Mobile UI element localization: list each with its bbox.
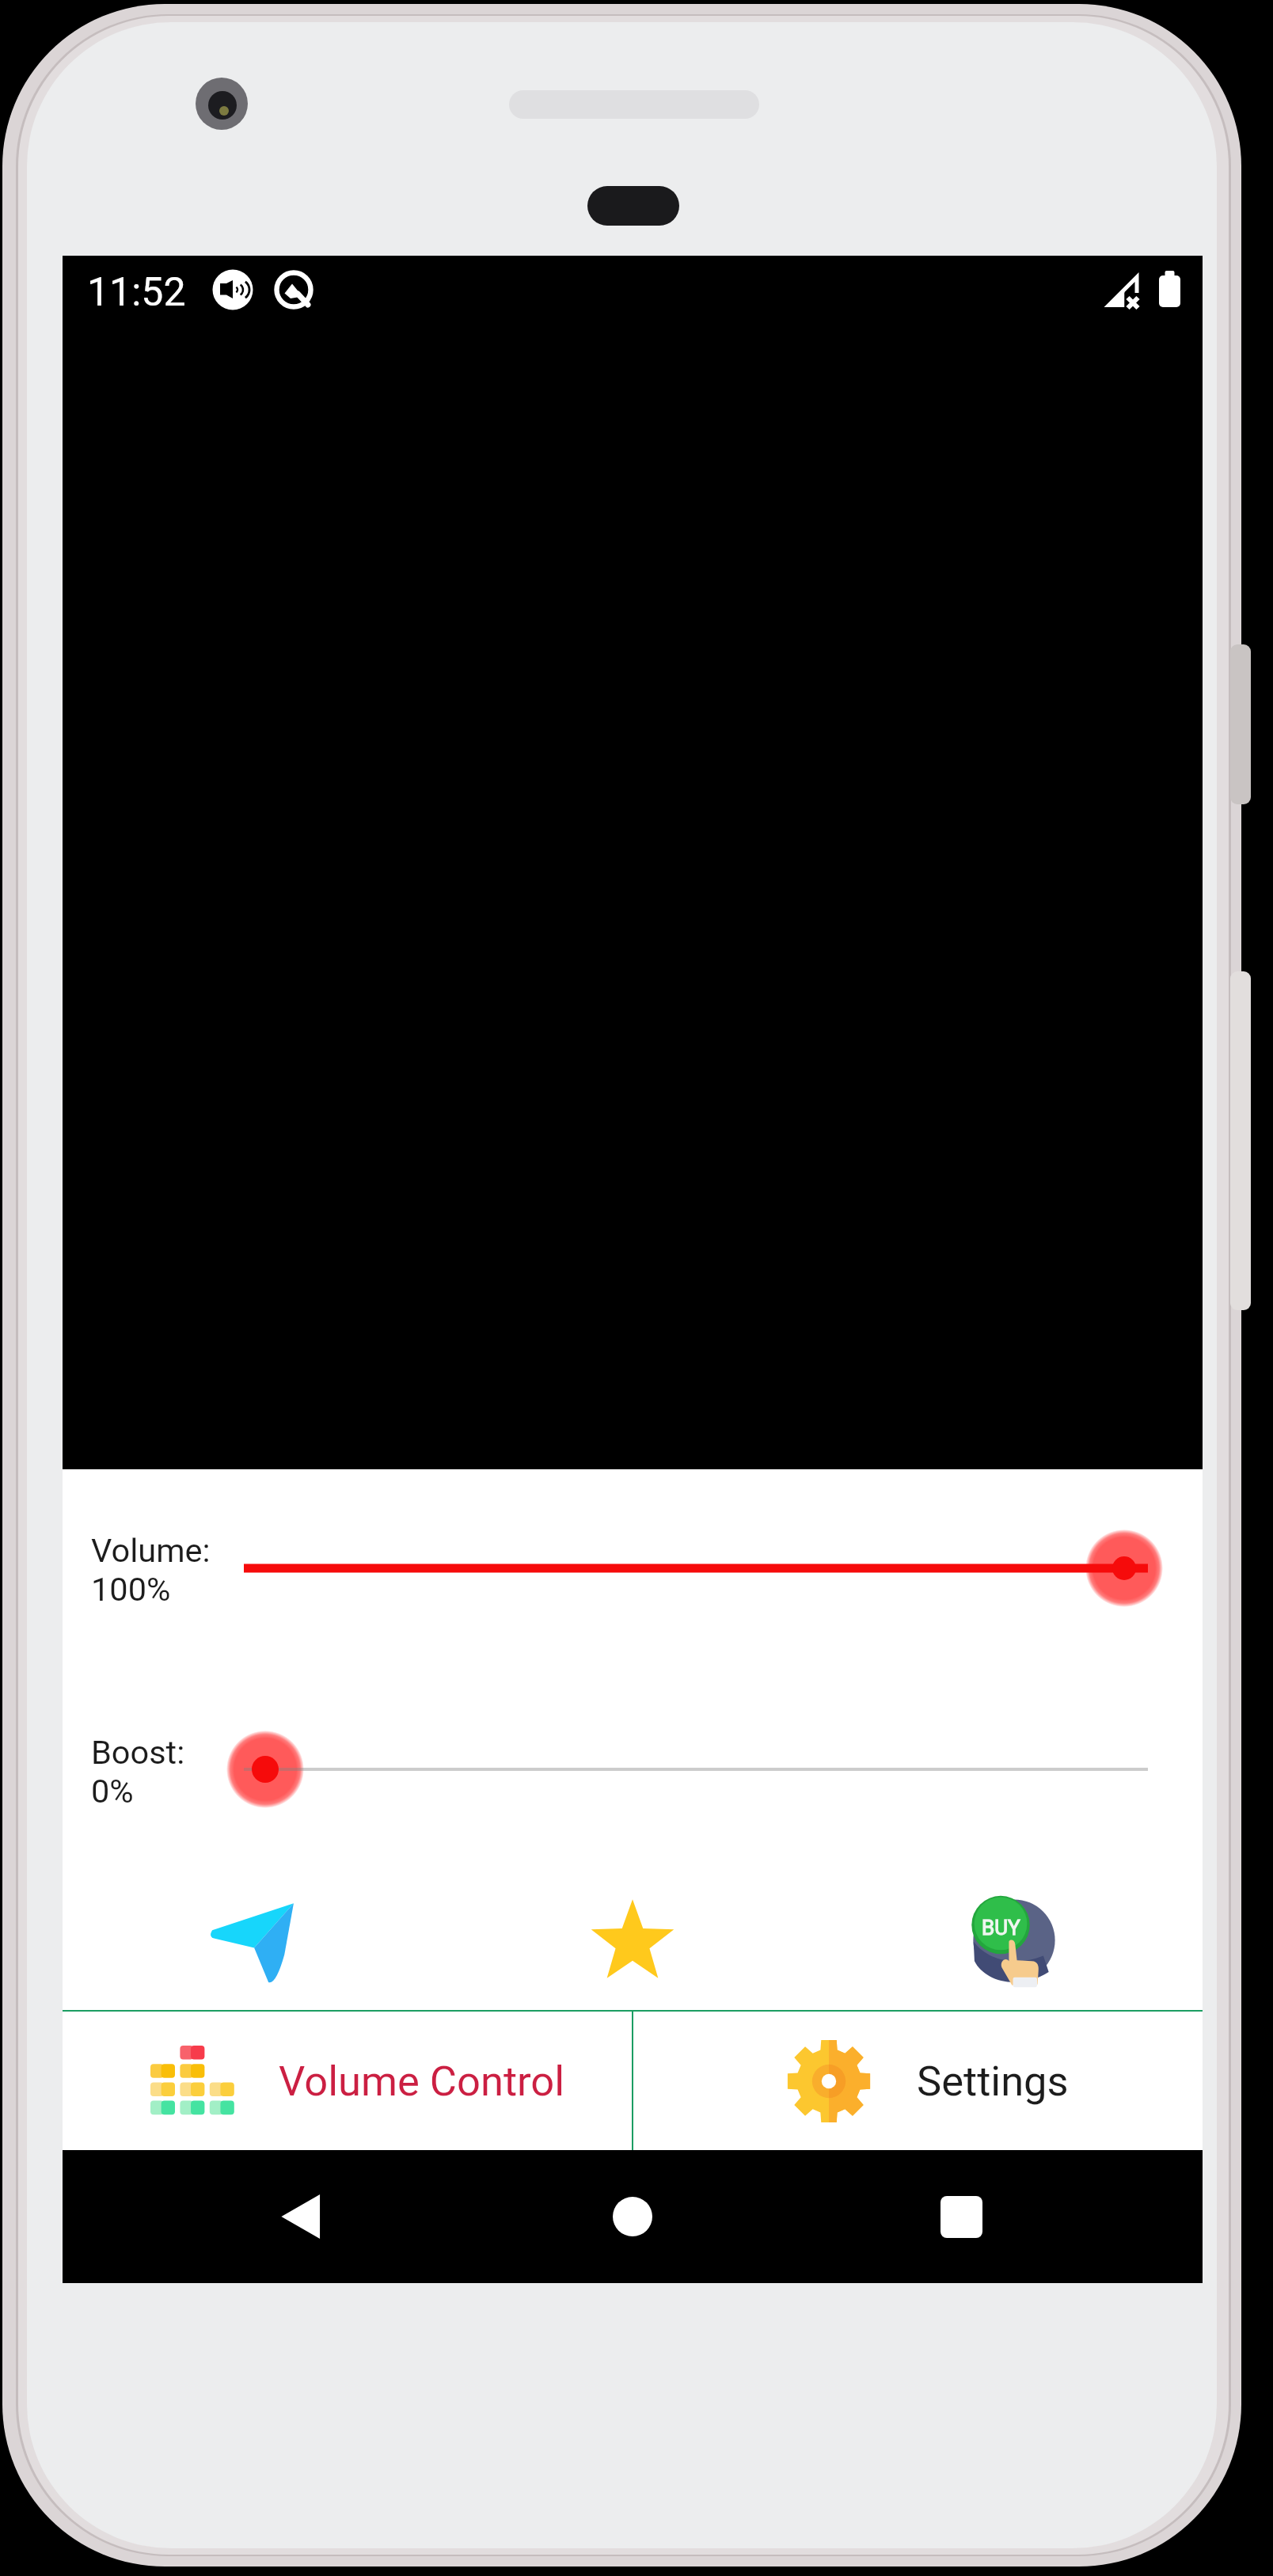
button[interactable]: Volume Control: [63, 2012, 632, 2150]
button[interactable]: Settings: [633, 2012, 1203, 2150]
button[interactable]: Boost slider: [220, 1727, 1172, 1812]
button[interactable]: Share app: [63, 1882, 443, 2000]
button[interactable]: Volume slider: [220, 1525, 1172, 1611]
staticText: 0%: [91, 1772, 134, 1810]
staticText: 100%: [91, 1570, 171, 1609]
staticText: BUY: [982, 1916, 1020, 1940]
button[interactable]: Back: [265, 2181, 336, 2252]
button[interactable]: Rate app: [443, 1882, 823, 2000]
button[interactable]: Buy premium: [823, 1882, 1203, 2000]
staticText: Boost:: [91, 1733, 185, 1772]
staticText: Volume:: [91, 1531, 211, 1570]
staticText: 11:52: [87, 269, 186, 316]
staticText: Volume Control: [279, 2057, 565, 2106]
button[interactable]: Home: [597, 2181, 668, 2252]
button[interactable]: Recent apps: [925, 2181, 997, 2252]
staticText: Settings: [917, 2057, 1069, 2106]
